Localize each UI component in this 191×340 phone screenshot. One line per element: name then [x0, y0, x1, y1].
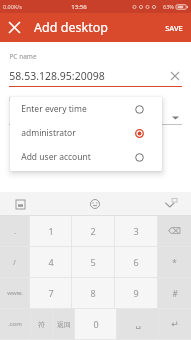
staticText: 1: [48, 225, 54, 237]
button[interactable]: 2: [72, 216, 114, 246]
staticText: administrator: [21, 127, 76, 139]
staticText: ⌫: [168, 226, 181, 236]
button[interactable]: 6: [115, 247, 157, 277]
staticText: b: [9, 133, 15, 145]
staticText: 3: [133, 225, 139, 237]
staticText: www.: [7, 289, 23, 297]
staticText: ␣: [135, 319, 141, 329]
staticText: 0: [93, 318, 99, 330]
staticText: 5: [90, 256, 96, 268]
staticText: 2: [90, 225, 96, 237]
button[interactable]: *: [158, 247, 191, 277]
staticText: SAVE: [165, 23, 183, 33]
button[interactable]: 0: [75, 309, 116, 339]
button[interactable]: Emoji: [87, 196, 103, 212]
staticText: #: [172, 288, 178, 299]
button[interactable]: 9: [115, 278, 157, 308]
button[interactable]: Enter: [159, 309, 191, 339]
staticText: 4: [48, 256, 54, 268]
staticText: .: [14, 227, 16, 236]
button[interactable]: www.: [0, 278, 29, 308]
button[interactable]: Hide keyboard: [163, 196, 179, 212]
staticText: Add desktop: [34, 19, 108, 36]
button[interactable]: Clipboard: [12, 196, 28, 212]
staticText: 0.00K/s: [3, 3, 22, 10]
staticText: 返回: [57, 320, 71, 329]
staticText: 6: [133, 256, 139, 268]
staticText: 符: [38, 320, 45, 329]
button[interactable]: #: [158, 278, 191, 308]
button[interactable]: 8: [72, 278, 114, 308]
button[interactable]: 返回: [53, 309, 74, 339]
button[interactable]: Enter every time: [10, 97, 162, 121]
button[interactable]: SAVE: [157, 13, 191, 42]
button[interactable]: 7: [30, 278, 71, 308]
button[interactable]: Backspace: [158, 216, 191, 246]
staticText: 63%: [163, 3, 174, 10]
staticText: 58.53.128.95:20098: [9, 69, 105, 83]
button[interactable]: Add user account: [10, 145, 162, 169]
staticText: .com: [8, 320, 22, 328]
staticText: 7: [48, 287, 54, 299]
button[interactable]: Space: [117, 309, 158, 339]
staticText: 13:56: [71, 3, 87, 11]
button[interactable]: 符: [31, 309, 52, 339]
button[interactable]: 3: [115, 216, 157, 246]
button[interactable]: /: [0, 247, 29, 277]
staticText: PC name: [9, 52, 37, 61]
button[interactable]: 1: [30, 216, 71, 246]
staticText: User name: [9, 95, 43, 104]
staticText: *: [172, 257, 177, 268]
staticText: Add user account: [21, 151, 91, 163]
staticText: ↵: [171, 319, 179, 329]
staticText: 8: [90, 287, 96, 299]
button[interactable]: 4: [30, 247, 71, 277]
button[interactable]: .com: [0, 309, 30, 339]
staticText: 9: [133, 287, 139, 299]
staticText: /: [13, 258, 16, 267]
button[interactable]: Close: [0, 13, 29, 42]
button[interactable]: Clear: [168, 69, 182, 83]
staticText: Enter every time: [21, 103, 87, 115]
button[interactable]: administrator: [10, 121, 162, 145]
button[interactable]: 5: [72, 247, 114, 277]
